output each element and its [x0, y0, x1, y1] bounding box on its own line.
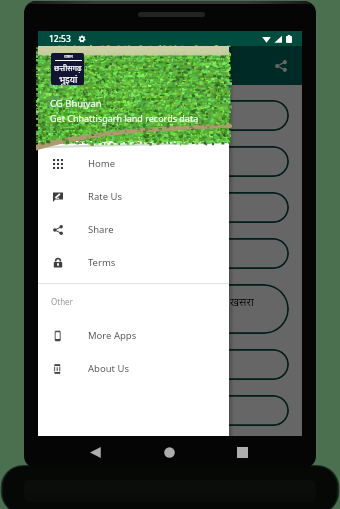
staticText: छत्तीसगढ़	[54, 62, 82, 73]
button[interactable]: Terms	[38, 246, 229, 279]
staticText: Other	[51, 296, 73, 307]
staticText: Rate Us	[88, 190, 122, 203]
button[interactable]: Home	[38, 147, 229, 180]
staticText: Home	[88, 157, 116, 170]
button[interactable]: खसरा विवरण	[51, 146, 289, 177]
staticText: Get Chhattisgarh land records data	[50, 112, 199, 124]
button[interactable]: खतौनी / बी-1	[51, 192, 289, 223]
button[interactable]: More Apps	[38, 319, 229, 352]
staticText: CG Bhuiyan	[50, 97, 102, 110]
button[interactable]: आधार सीडिंग कोड	[51, 349, 289, 380]
button[interactable]: Back	[90, 447, 101, 458]
button[interactable]: Share	[268, 53, 294, 79]
staticText: About Us	[88, 362, 129, 375]
staticText: डिजिटल हस्ताक्षरित बी-1 तथा पी-।। खसरा प…	[86, 294, 254, 324]
staticText: More Apps	[88, 329, 137, 342]
staticText: Share	[88, 223, 114, 236]
staticText: शासन	[64, 54, 73, 59]
staticText: Terms	[88, 256, 116, 269]
button[interactable]: About Us	[38, 352, 229, 385]
button[interactable]: Home	[164, 447, 175, 458]
button[interactable]: भू-नक्शा	[51, 100, 289, 131]
button[interactable]: डिजिटल हस्ताक्षरित बी-1 तथा पी-।। खसरा प…	[51, 284, 289, 334]
staticText: भुइयां	[59, 73, 78, 85]
staticText: भू-नक्शा	[153, 108, 188, 123]
button[interactable]: आवेदन स्थिति	[51, 238, 289, 269]
staticText: 12:53	[49, 33, 71, 45]
button[interactable]: Rate Us	[38, 180, 229, 213]
button[interactable]: शासकीय एवं गौचर भूमि की	[51, 395, 289, 426]
button[interactable]: Share	[38, 213, 229, 246]
